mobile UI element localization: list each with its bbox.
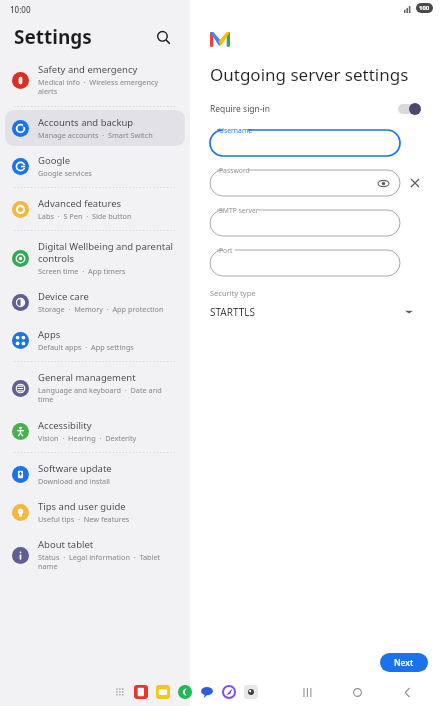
button[interactable]: Apps (5, 322, 185, 358)
staticText: Digital Wellbeing and parental controls (38, 240, 177, 265)
staticText: Settings (14, 24, 92, 50)
button[interactable]: Back (397, 682, 417, 702)
staticText: Password (219, 166, 250, 175)
button[interactable]: Home (347, 682, 367, 702)
staticText: 10:00 (10, 4, 31, 15)
button[interactable]: Show password (377, 177, 390, 190)
button[interactable]: About tablet (5, 532, 185, 578)
staticText: Labs · S Pen · Side button (38, 211, 132, 221)
button[interactable]: messages (199, 684, 215, 700)
button[interactable]: Tips and user guide (5, 494, 185, 530)
button[interactable]: Software update (5, 456, 185, 492)
button[interactable]: Search (150, 24, 176, 50)
staticText: Vision · Hearing · Dexterity (38, 433, 137, 443)
staticText: Security type (210, 288, 256, 298)
button[interactable]: Safety and emergency (5, 57, 185, 103)
staticText: Tips and user guide (38, 500, 126, 513)
button[interactable]: notes (133, 684, 149, 700)
button[interactable]: Google (5, 148, 185, 184)
button[interactable]: Next (380, 653, 428, 672)
staticText: Safety and emergency (38, 63, 138, 76)
button[interactable]: Digital Wellbeing and parental controls (5, 234, 185, 282)
staticText: Manage accounts · Smart Switch (38, 130, 153, 140)
button[interactable] (210, 130, 400, 156)
button[interactable]: camera (243, 684, 259, 700)
staticText: Accessibility (38, 419, 92, 432)
button[interactable]: phone (177, 684, 193, 700)
button[interactable]: Accessibility (5, 413, 185, 449)
staticText: Medical info · Wireless emergency alerts (38, 77, 177, 97)
button[interactable] (210, 170, 400, 196)
button[interactable]: files (155, 684, 171, 700)
staticText: Google services (38, 168, 92, 178)
button[interactable]: Recents (297, 682, 317, 702)
staticText: SMTP server (219, 206, 259, 215)
staticText: Status · Legal information · Tablet name (38, 552, 177, 572)
staticText: Next (394, 657, 414, 669)
staticText: Accounts and backup (38, 116, 134, 129)
button[interactable] (210, 210, 400, 236)
staticText: Language and keyboard · Date and time (38, 385, 177, 405)
staticText: Username (219, 126, 253, 135)
staticText: Download and install (38, 476, 110, 486)
button[interactable]: Device care (5, 284, 185, 320)
staticText: Storage · Memory · App protection (38, 304, 164, 314)
staticText: About tablet (38, 538, 94, 551)
staticText: Default apps · App settings (38, 342, 134, 352)
staticText: Advanced features (38, 197, 122, 210)
staticText: Apps (38, 328, 61, 341)
button[interactable]: Accounts and backup (5, 110, 185, 146)
staticText: Software update (38, 462, 112, 475)
staticText: Device care (38, 290, 89, 303)
button[interactable]: Apps (113, 685, 127, 699)
button[interactable]: Advanced features (5, 191, 185, 227)
button[interactable]: internet (221, 684, 237, 700)
staticText: Require sign-in (210, 103, 271, 115)
button[interactable]: Require sign-in (210, 103, 428, 115)
staticText: Google (38, 154, 71, 167)
staticText: General management (38, 371, 136, 384)
staticText: 100 (419, 4, 430, 12)
staticText: Useful tips · New features (38, 514, 130, 524)
staticText: Screen time · App timers (38, 266, 126, 276)
button[interactable] (210, 250, 400, 276)
button[interactable]: General management (5, 365, 185, 411)
staticText: STARTTLS (210, 305, 256, 319)
button[interactable]: Clear (408, 176, 422, 190)
staticText: Outgoing server settings (210, 63, 409, 86)
staticText: Port (219, 246, 233, 255)
button[interactable]: Security type (210, 288, 413, 319)
